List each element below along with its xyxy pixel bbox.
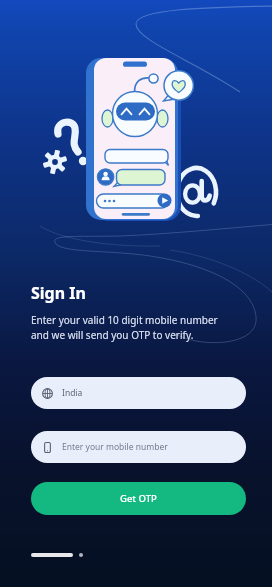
staticText: Enter your mobile number (62, 441, 168, 453)
staticText: Enter your valid 10 digit mobile number … (31, 313, 218, 342)
button[interactable]: Get OTP (31, 482, 246, 515)
button[interactable]: India (31, 377, 246, 409)
staticText: Sign In (31, 282, 86, 304)
staticText: Get OTP (120, 492, 157, 505)
staticText: India (62, 387, 83, 399)
button[interactable]: Enter your mobile number (31, 431, 246, 463)
